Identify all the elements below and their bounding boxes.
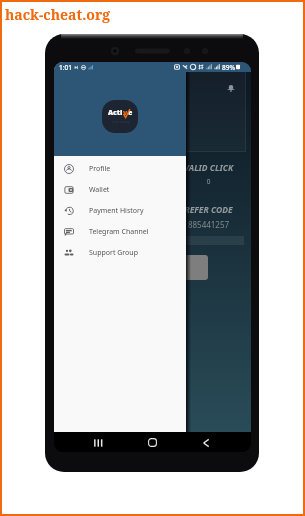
button[interactable]: Support Group (54, 242, 186, 263)
staticText: REFER CODE (110, 204, 251, 216)
button[interactable]: Wallet (54, 179, 186, 200)
button[interactable]: Payment History (54, 200, 186, 221)
button[interactable]: Profile (54, 158, 186, 179)
staticText: hack-cheat.org (5, 5, 111, 24)
staticText: e (128, 108, 133, 118)
button[interactable]: Back (197, 434, 215, 451)
staticText: 885441257 (110, 219, 251, 230)
staticText: 1:01 (59, 63, 72, 72)
button[interactable]: Home (143, 434, 161, 451)
staticText: Wallet (89, 185, 110, 195)
staticText: Profile (89, 164, 111, 174)
staticText: Telegram Channel (89, 227, 149, 237)
staticText: v (123, 108, 128, 118)
button[interactable] (168, 255, 208, 280)
staticText: 89% (222, 63, 235, 72)
button[interactable]: Recent apps (88, 434, 106, 451)
staticText: VALID CLICK (110, 162, 251, 174)
other: Notifications (227, 84, 235, 92)
staticText: smart earning (112, 120, 130, 124)
staticText: Support Group (89, 248, 138, 258)
staticText: 0 (110, 177, 251, 186)
staticText: Payment History (89, 206, 144, 216)
button[interactable]: Telegram Channel (54, 221, 186, 242)
staticText: Acti (108, 108, 123, 118)
